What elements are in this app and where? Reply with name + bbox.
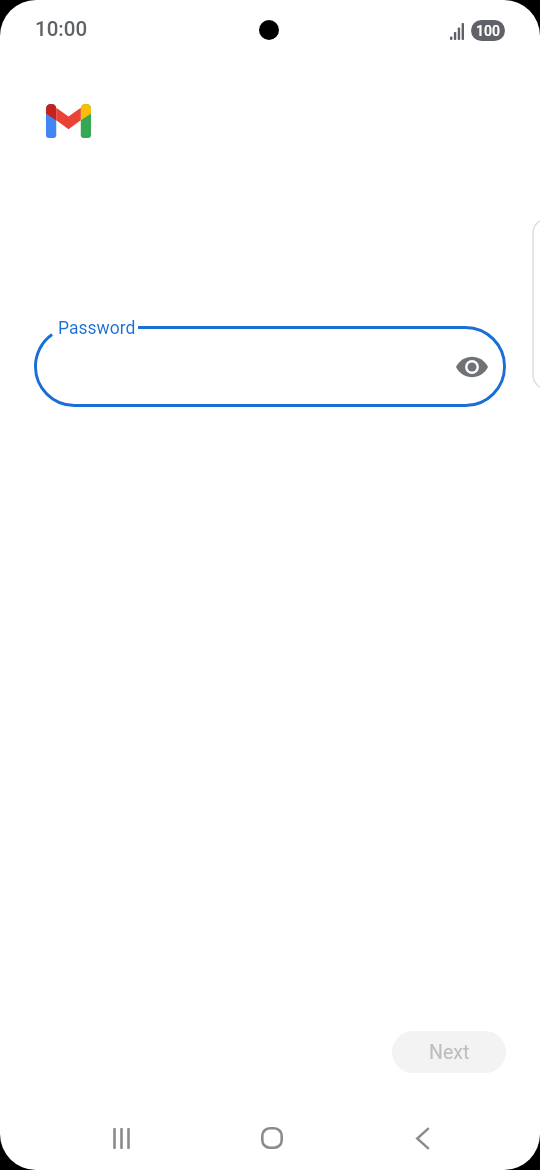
button[interactable]: Show password [448, 343, 496, 391]
staticText: Password [58, 318, 136, 339]
staticText: 10:00 [35, 17, 88, 41]
staticText: 100 [476, 23, 500, 39]
button[interactable]: Password [34, 326, 506, 407]
button[interactable]: Next [392, 1031, 506, 1073]
button[interactable]: Recent apps [81, 1098, 161, 1170]
button[interactable]: Home [232, 1098, 312, 1170]
staticText: Next [429, 1041, 470, 1064]
button[interactable]: Back [383, 1098, 463, 1170]
